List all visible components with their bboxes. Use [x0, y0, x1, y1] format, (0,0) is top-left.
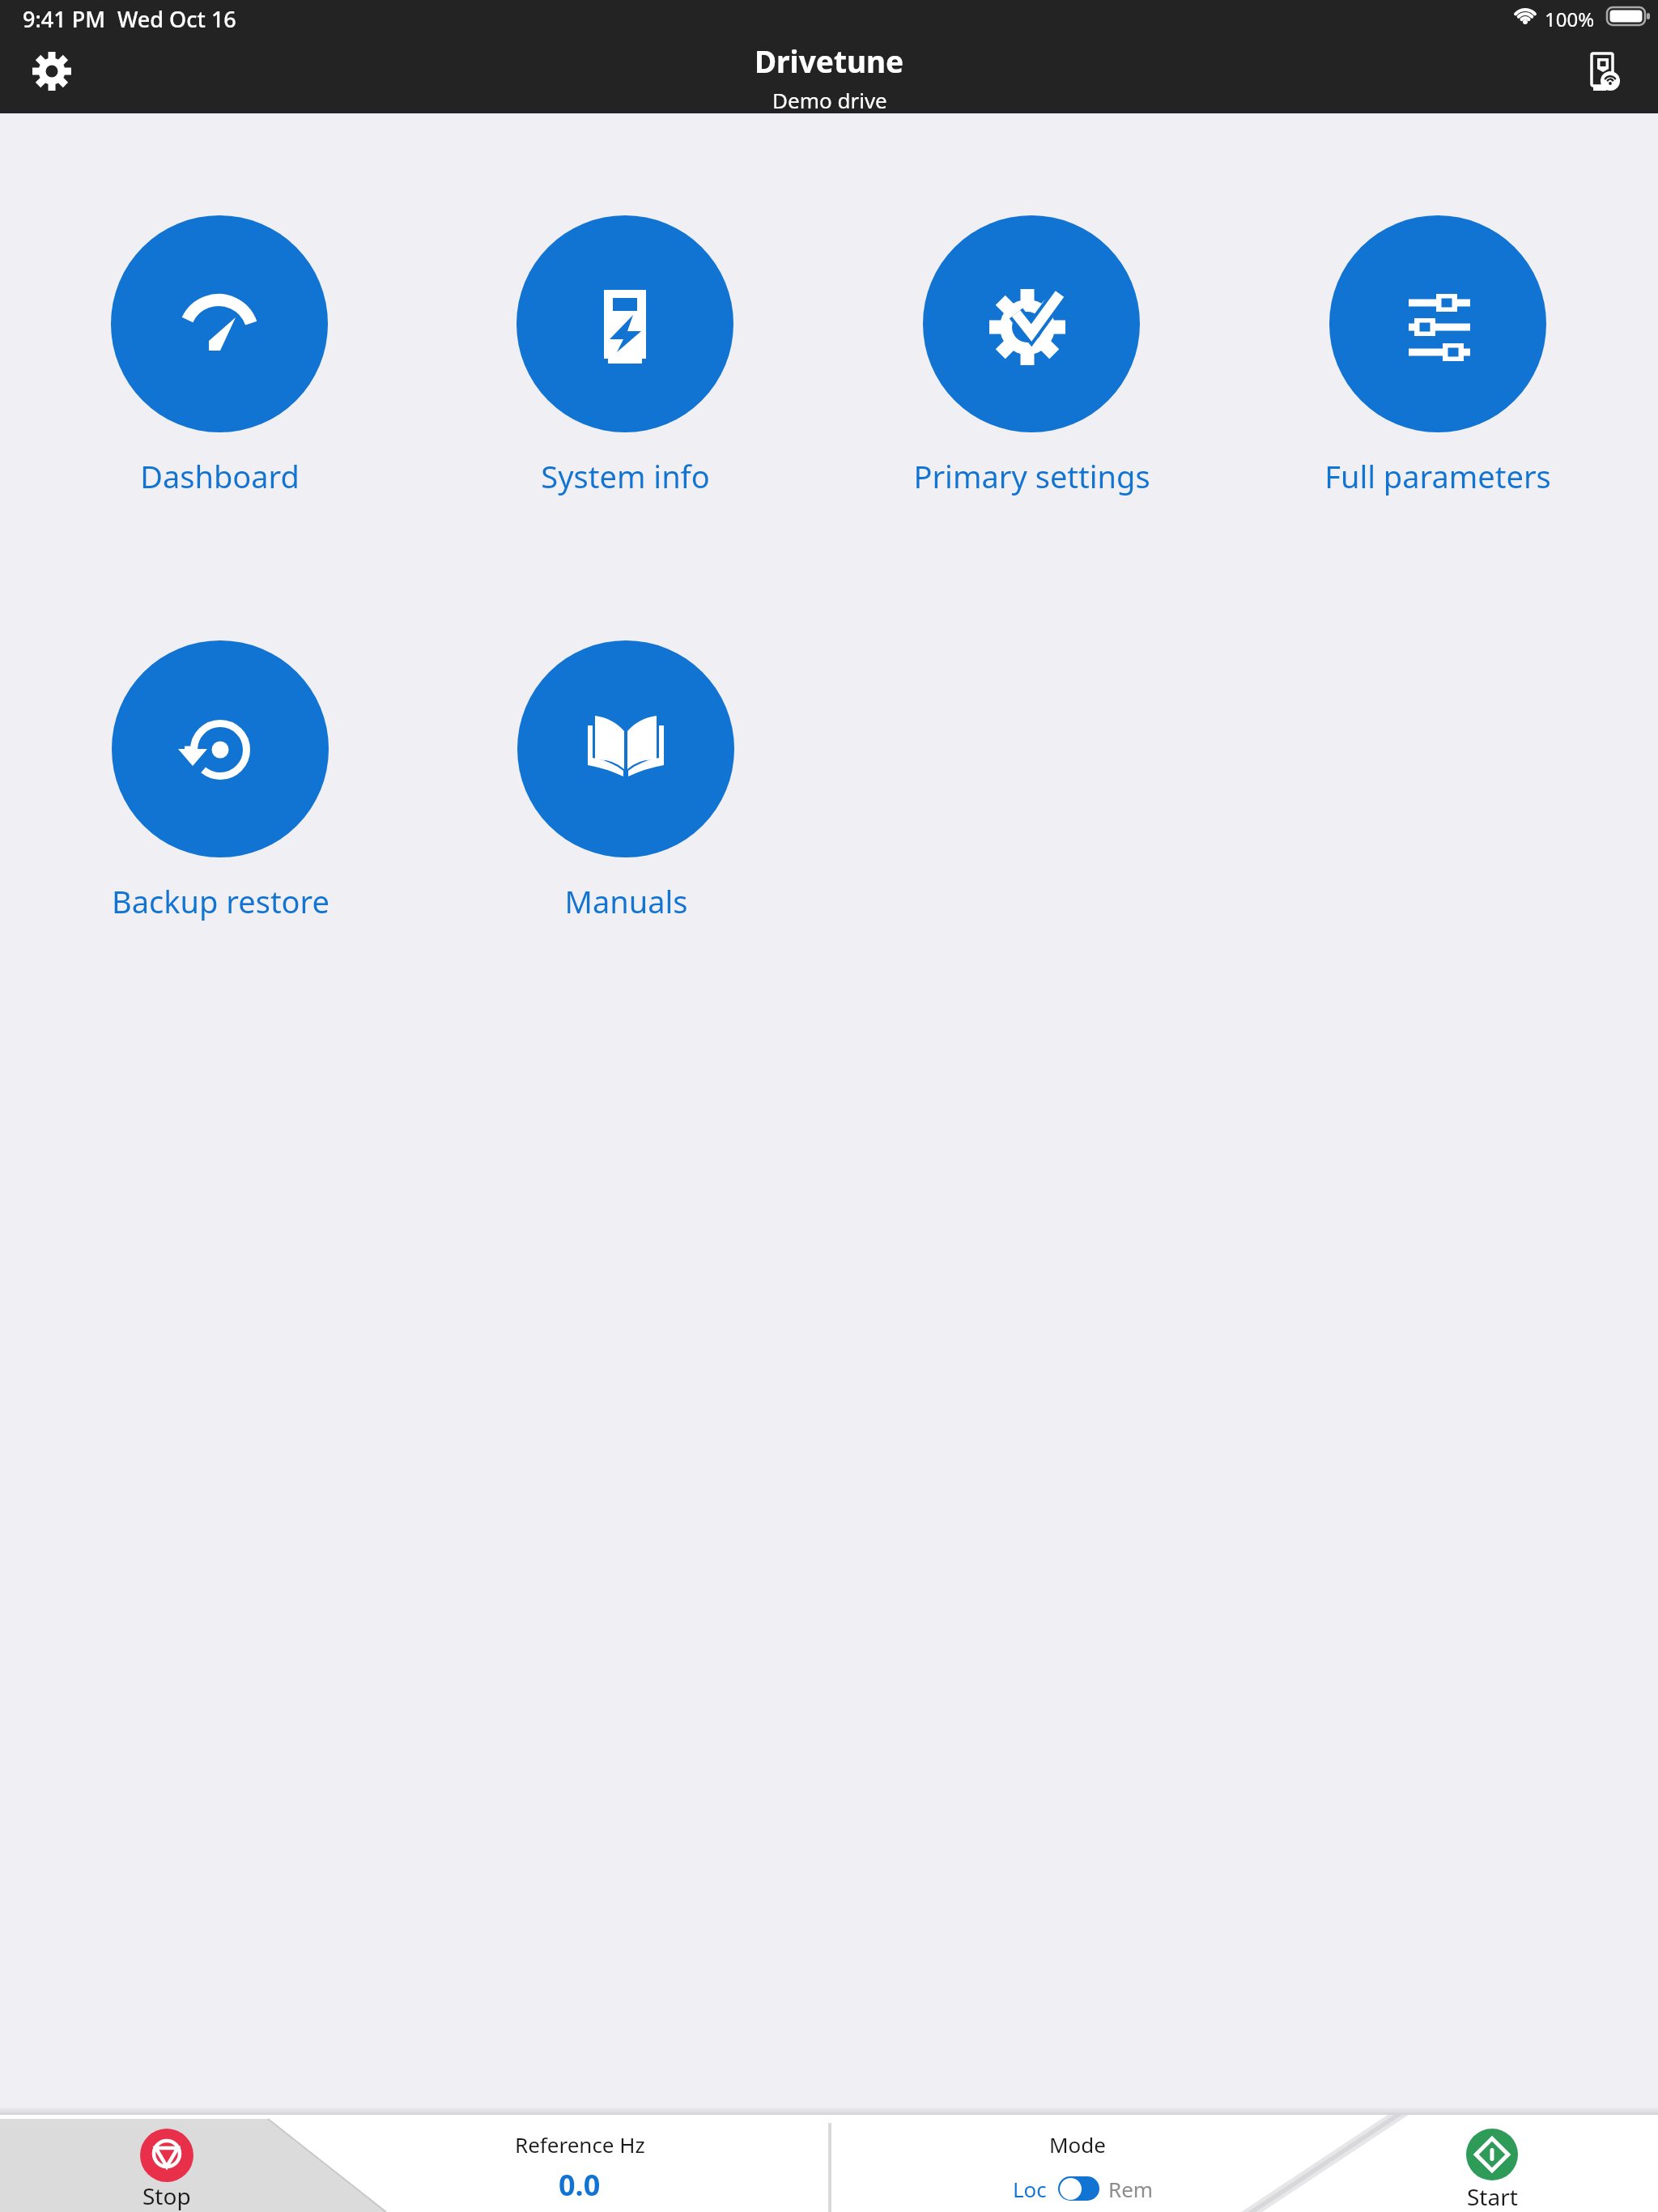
- staticText: Start: [1467, 2181, 1518, 2212]
- button[interactable]: Primary settings: [861, 215, 1201, 497]
- button[interactable]: [28, 47, 76, 96]
- button[interactable]: System info: [455, 215, 795, 497]
- staticText: Loc: [1013, 2175, 1047, 2203]
- staticText: System info: [541, 455, 710, 497]
- button[interactable]: Backup restore: [50, 640, 390, 922]
- button[interactable]: Dashboard: [49, 215, 389, 497]
- button[interactable]: [1058, 2176, 1099, 2201]
- staticText: Drivetune: [755, 40, 904, 81]
- staticText: Dashboard: [140, 455, 300, 497]
- button[interactable]: Full parameters: [1268, 215, 1608, 497]
- staticText: Full parameters: [1324, 455, 1551, 497]
- staticText: Primary settings: [913, 455, 1150, 497]
- staticText: Demo drive: [772, 86, 887, 114]
- staticText: Stop: [142, 2180, 191, 2211]
- staticText: Wed Oct 16: [117, 4, 236, 34]
- staticText: Reference Hz: [515, 2130, 645, 2159]
- button[interactable]: [1579, 45, 1630, 97]
- button[interactable]: [118, 2115, 215, 2212]
- staticText: Rem: [1108, 2175, 1154, 2203]
- button[interactable]: [1443, 2115, 1541, 2212]
- staticText: Mode: [1049, 2130, 1106, 2159]
- staticText: 100%: [1545, 6, 1595, 32]
- staticText: Backup restore: [112, 880, 329, 922]
- staticText: 9:41 PM: [23, 4, 105, 34]
- staticText: Manuals: [564, 880, 688, 922]
- button[interactable]: Manuals: [456, 640, 796, 922]
- staticText: 0.0: [559, 2165, 601, 2204]
